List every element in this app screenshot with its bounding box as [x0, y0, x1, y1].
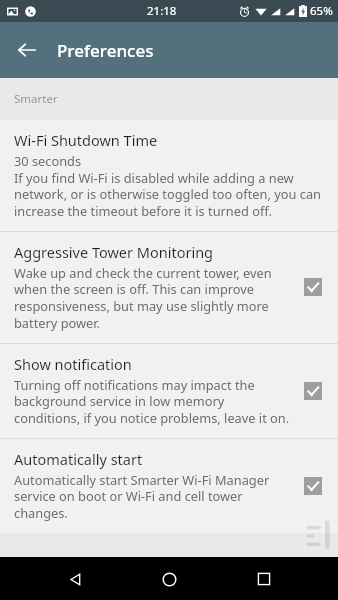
staticText: Wi-Fi Shutdown Time	[14, 130, 158, 150]
button[interactable]: Recents	[244, 559, 284, 599]
staticText: Turning off notifications may impact the…	[14, 376, 290, 427]
button[interactable]: Aggressive Tower Monitoring	[0, 232, 338, 343]
staticText: Automatically start Smarter Wi-Fi Manage…	[14, 471, 290, 522]
button[interactable]: Back	[55, 559, 95, 599]
staticText: Automatically start	[14, 449, 143, 469]
staticText: Preferences	[57, 39, 154, 62]
staticText: Aggressive Tower Monitoring	[14, 242, 214, 262]
button[interactable]: Toggle Aggressive Tower Monitoring	[296, 270, 330, 304]
staticText: Show notification	[14, 354, 132, 374]
button[interactable]: Wi-Fi Shutdown Time	[0, 120, 338, 231]
staticText: Smarter	[14, 91, 58, 107]
button[interactable]: Navigate up	[7, 30, 47, 70]
staticText: If you find Wi-Fi is disabled while addi…	[14, 169, 330, 220]
button[interactable]: Home	[149, 559, 189, 599]
button[interactable]: Automatically start	[0, 439, 338, 533]
staticText: Wake up and check the current tower, eve…	[14, 264, 290, 332]
button[interactable]: Show notification	[0, 344, 338, 438]
button[interactable]: Toggle Show notification	[296, 374, 330, 408]
button[interactable]: Toggle Automatically start	[296, 469, 330, 503]
staticText: 30 seconds	[14, 152, 82, 169]
staticText: 65%	[310, 3, 333, 19]
staticText: 21:18	[147, 3, 177, 19]
